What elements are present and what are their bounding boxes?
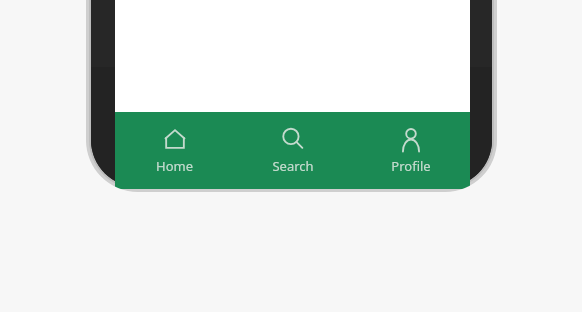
staticText: Profile xyxy=(391,157,431,175)
staticText: Search xyxy=(272,157,314,175)
button[interactable]: Home xyxy=(115,112,234,189)
staticText: Home xyxy=(156,157,193,175)
button[interactable]: Search xyxy=(234,112,352,189)
button[interactable]: Profile xyxy=(352,112,470,189)
